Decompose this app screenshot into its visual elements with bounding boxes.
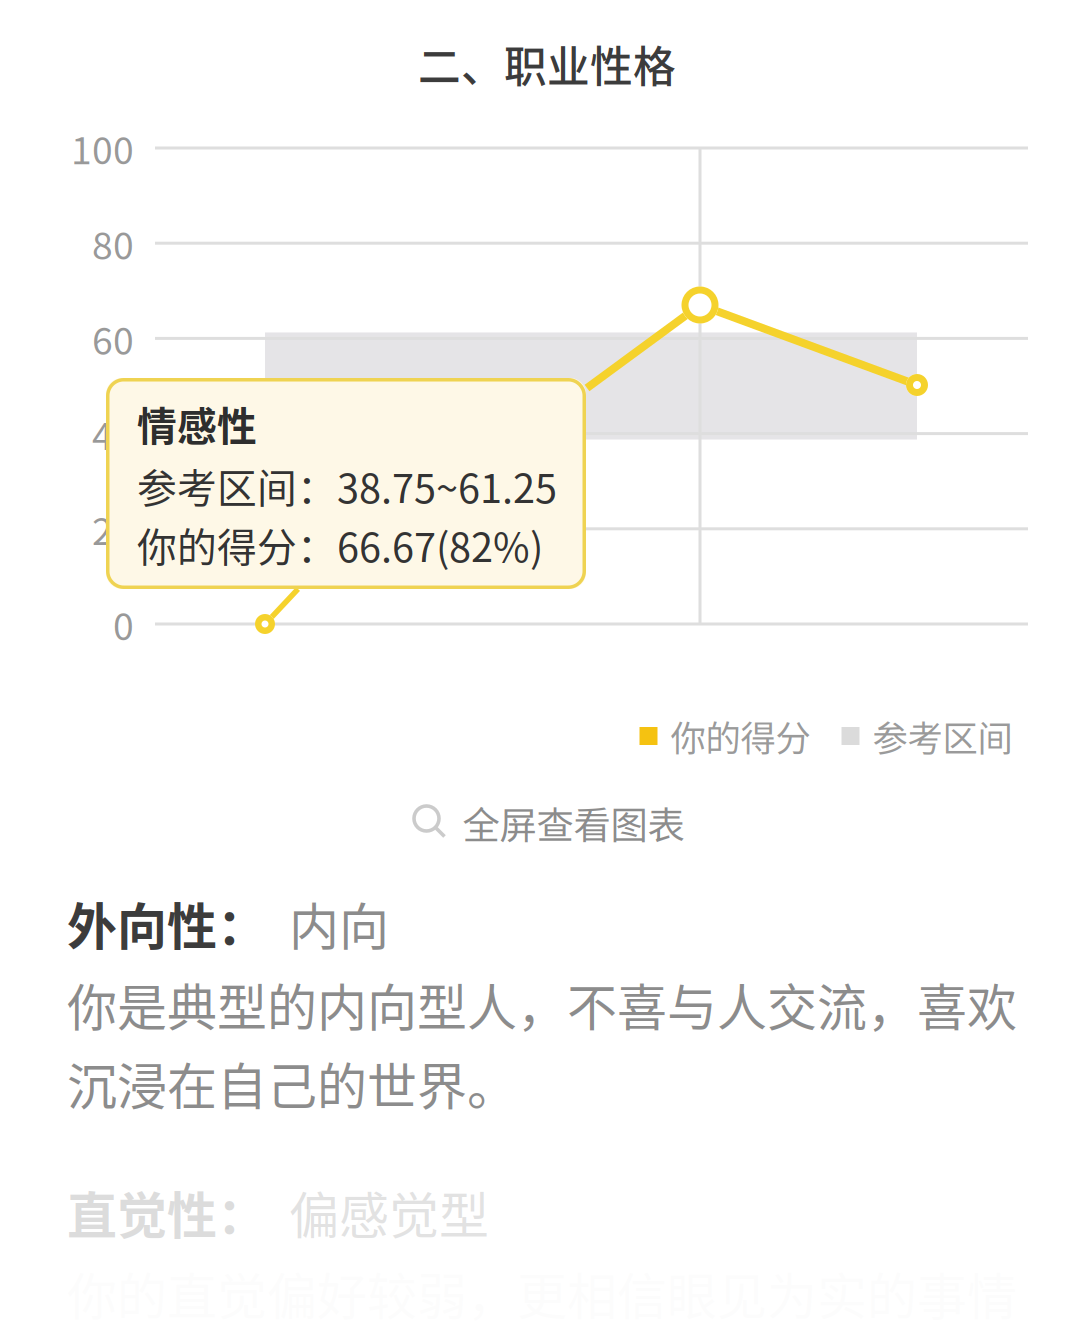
staticText: 你的得分 [670, 710, 810, 762]
staticText: 参考区间 [872, 710, 1012, 762]
staticText: 外向性： [67, 887, 267, 959]
staticText: 情感性 [137, 395, 257, 452]
staticText: 0 [113, 597, 134, 651]
button[interactable]: 全屏查看图表 [399, 786, 696, 860]
staticText: 偏感觉型 [267, 1176, 489, 1248]
staticText: 40 [92, 407, 134, 461]
staticText: 直觉性： [67, 1176, 267, 1248]
staticText: 20 [92, 502, 134, 556]
staticText: 内向 [267, 887, 389, 959]
staticText: 你是典型的内向型人，不喜与人交流，喜欢 [67, 968, 1017, 1040]
staticText: 沉浸在自己的世界。 [67, 1047, 517, 1119]
staticText: 100 [71, 121, 134, 175]
staticText: 全屏查看图表 [462, 796, 684, 850]
staticText: 参考区间：38.75~61.25 [137, 457, 557, 514]
staticText: 80 [92, 216, 134, 270]
staticText: 你的得分：66.67(82%) [137, 516, 543, 573]
staticText: 60 [92, 311, 134, 365]
staticText: 二、职业性格 [418, 33, 676, 95]
